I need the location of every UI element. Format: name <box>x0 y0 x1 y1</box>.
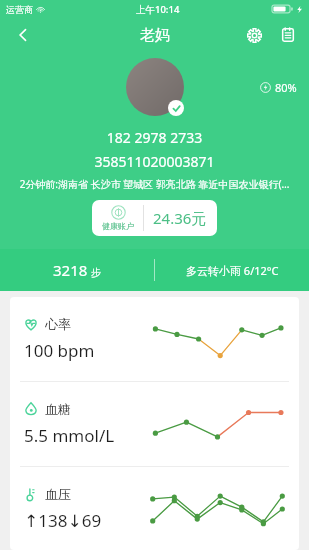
staticText: 80% <box>275 80 297 95</box>
button[interactable]: 血压 <box>10 467 299 550</box>
staticText: 步 <box>91 266 101 279</box>
button[interactable]: Records <box>273 20 303 50</box>
staticText: 358511020003871 <box>0 152 309 171</box>
staticText: 上午10:14 <box>136 3 180 16</box>
staticText: 24.36元 <box>153 208 207 228</box>
staticText: 运营商 <box>6 4 33 15</box>
button[interactable]: Back <box>6 18 40 52</box>
button[interactable]: 心率 <box>10 297 299 381</box>
staticText: 血糖 <box>45 401 71 417</box>
staticText: 健康账户 <box>102 221 134 231</box>
staticText: 心率 <box>45 316 71 332</box>
staticText: 100 bpm <box>24 339 95 362</box>
staticText: 血压 <box>45 486 71 502</box>
staticText: 5.5 mmol/L <box>24 424 115 447</box>
staticText: 老妈 <box>140 26 170 45</box>
button[interactable]: 多云转小雨 6/12°C <box>155 263 309 278</box>
staticText: 182 2978 2733 <box>0 128 309 147</box>
button[interactable]: 3218 <box>0 260 154 280</box>
staticText: 3218 <box>53 260 88 280</box>
button[interactable]: 健康账户 <box>92 200 217 236</box>
button[interactable]: Avatar <box>126 58 184 116</box>
staticText: ↑138↓69 <box>24 509 102 532</box>
button[interactable]: Settings <box>239 20 269 50</box>
staticText: 2分钟前:湖南省 长沙市 望城区 郭亮北路 靠近中国农业银行(… <box>6 177 303 191</box>
button[interactable]: 血糖 <box>10 382 299 466</box>
staticText: 多云转小雨 6/12°C <box>186 263 279 278</box>
